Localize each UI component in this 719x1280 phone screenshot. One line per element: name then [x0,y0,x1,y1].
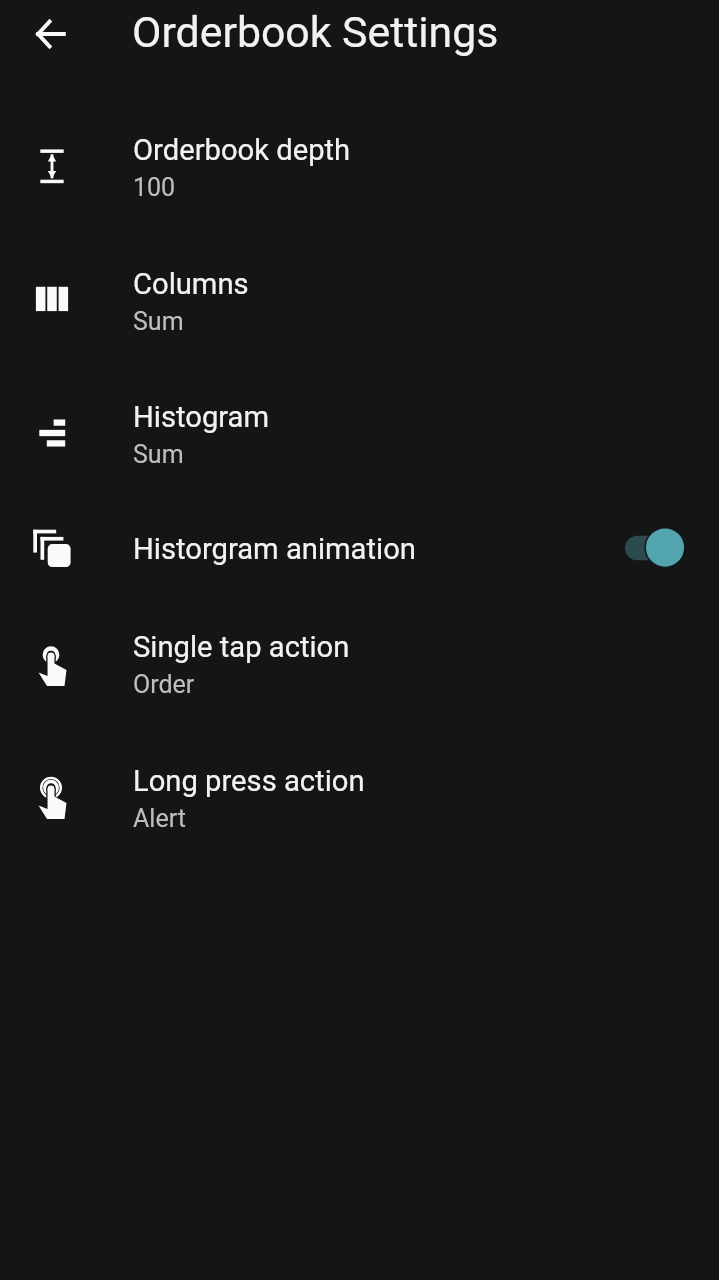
staticText: Alert [133,804,186,833]
button[interactable]: Long press action [0,731,719,864]
button[interactable]: Single tap action [0,597,719,730]
staticText: Sum [133,307,184,336]
staticText: Orderbook depth [133,133,351,167]
staticText: Historgram animation [133,532,416,566]
staticText: 100 [133,173,176,202]
button[interactable]: Columns [0,234,719,367]
staticText: Long press action [133,764,365,798]
staticText: Columns [133,267,249,301]
button[interactable]: Historgram animation [0,517,719,615]
staticText: Histogram [133,400,270,434]
staticText: Single tap action [133,630,350,664]
button[interactable]: Histogram [0,367,719,500]
staticText: Order [133,670,195,699]
staticText: Sum [133,440,184,469]
button[interactable]: Histogram animation toggle [614,520,698,576]
staticText: Orderbook Settings [132,7,499,57]
button[interactable]: Orderbook depth [0,100,719,233]
button[interactable]: Navigate up [23,6,79,62]
